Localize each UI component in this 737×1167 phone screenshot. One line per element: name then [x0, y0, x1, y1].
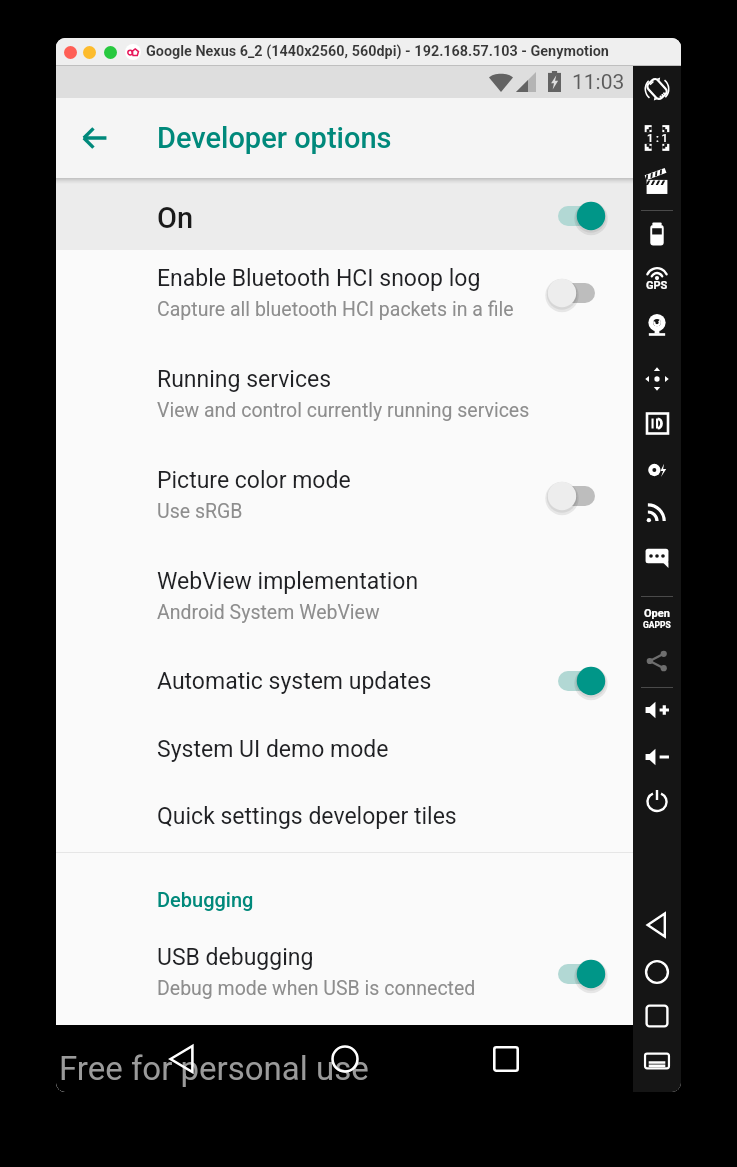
button[interactable]: Automatic system updates [544, 659, 606, 703]
staticText: 1 : 1 [647, 132, 668, 145]
staticText: Quick settings developer tiles [157, 803, 457, 830]
staticText: WebView implementation [157, 568, 419, 595]
button[interactable]: Quick settings developer tiles [56, 782, 633, 850]
button[interactable]: Disk IO [633, 450, 681, 490]
button[interactable]: Power [633, 780, 681, 820]
button[interactable]: Genymotion [125, 44, 141, 60]
staticText: Developer options [157, 121, 392, 155]
button[interactable]: Recents [482, 1025, 530, 1092]
staticText: USB debugging [157, 944, 314, 971]
button[interactable]: Back [71, 114, 119, 162]
button[interactable]: GPS [633, 259, 681, 299]
staticText: Automatic system updates [157, 668, 432, 695]
staticText: On [157, 201, 194, 235]
button[interactable]: Identifiers [633, 403, 681, 443]
staticText: Capture all bluetooth HCI packets in a f… [157, 298, 514, 321]
button[interactable]: WebView implementation [56, 553, 633, 654]
button[interactable]: Back [158, 1025, 206, 1092]
button[interactable]: Volume down [633, 737, 681, 777]
button[interactable]: Close [64, 46, 77, 59]
button[interactable]: Home [321, 1025, 369, 1092]
button[interactable]: On [544, 194, 606, 238]
staticText: View and control currently running servi… [157, 399, 530, 422]
button[interactable]: Volume up [633, 690, 681, 730]
button[interactable]: Accelerometer [633, 359, 681, 399]
staticText: Use sRGB [157, 500, 243, 523]
button[interactable]: Battery [633, 214, 681, 254]
button[interactable]: Picture color mode [56, 452, 633, 553]
staticText: Running services [157, 366, 332, 393]
button[interactable]: Network [633, 492, 681, 532]
button[interactable]: Picture color mode [544, 474, 606, 518]
staticText: Android System WebView [157, 601, 380, 624]
staticText: Debug mode when USB is connected [157, 977, 476, 1000]
staticText: 11:03 [572, 70, 625, 95]
staticText: Debugging [157, 888, 254, 911]
staticText: GAPPS [643, 620, 671, 630]
button[interactable]: System UI demo mode [56, 715, 633, 783]
button[interactable]: Maximize [104, 46, 117, 59]
staticText: GPS [646, 279, 668, 292]
staticText: System UI demo mode [157, 736, 389, 763]
button[interactable]: Minimize [83, 46, 96, 59]
button[interactable]: USB debugging [56, 929, 633, 1025]
button[interactable]: Rotate [633, 69, 681, 109]
button[interactable]: USB debugging [544, 952, 606, 996]
staticText: Enable Bluetooth HCI snoop log [157, 265, 481, 292]
button[interactable]: Scale 1:1 [633, 118, 681, 158]
button[interactable]: Recents [633, 996, 681, 1036]
button[interactable]: Keyboard [633, 1041, 681, 1081]
button[interactable]: Back [633, 905, 681, 945]
button[interactable]: Automatic system updates [56, 647, 633, 715]
button[interactable]: Share [633, 641, 681, 681]
button[interactable]: Enable Bluetooth HCI snoop log [56, 250, 633, 351]
button[interactable]: SMS [633, 537, 681, 577]
button[interactable]: Camera [633, 305, 681, 345]
button[interactable]: Enable Bluetooth HCI snoop log [544, 271, 606, 315]
button[interactable]: Home [633, 952, 681, 992]
staticText: Free for personal use [59, 1049, 369, 1088]
button[interactable]: Running services [56, 351, 633, 452]
staticText: Picture color mode [157, 467, 351, 494]
button[interactable]: Record screen [633, 162, 681, 202]
staticText: Google Nexus 6_2 (1440x2560, 560dpi) - 1… [146, 43, 609, 60]
button[interactable]: On [56, 178, 633, 250]
button[interactable]: Open GAPPS [633, 598, 681, 638]
staticText: Open [644, 607, 670, 620]
